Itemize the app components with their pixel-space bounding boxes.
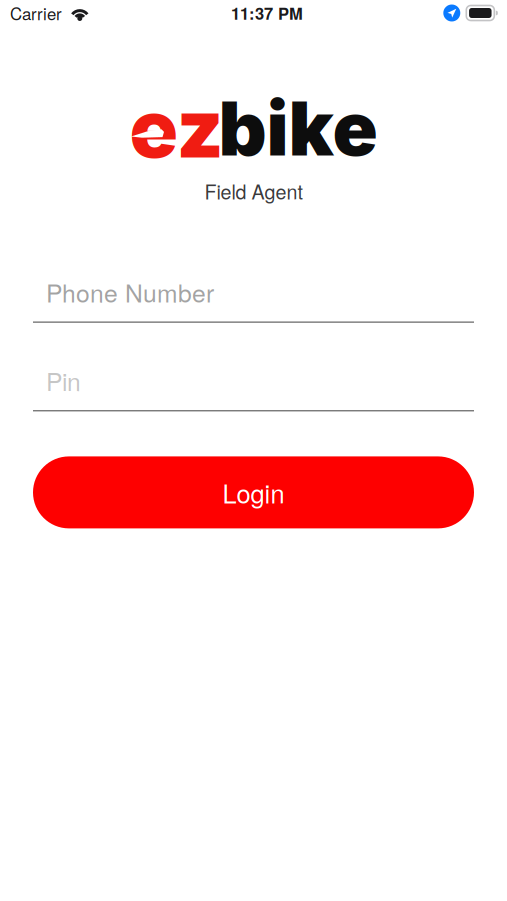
staticText: Carrier (10, 1, 62, 25)
staticText: Field Agent (204, 177, 302, 205)
staticText: Phone Number (46, 274, 214, 309)
staticText: Pin (46, 363, 81, 398)
staticText: 11:37 PM (231, 1, 303, 25)
staticText: ez (129, 80, 223, 177)
staticText: bike (218, 83, 377, 173)
staticText: Login (222, 474, 284, 511)
button[interactable]: Login (33, 456, 474, 528)
